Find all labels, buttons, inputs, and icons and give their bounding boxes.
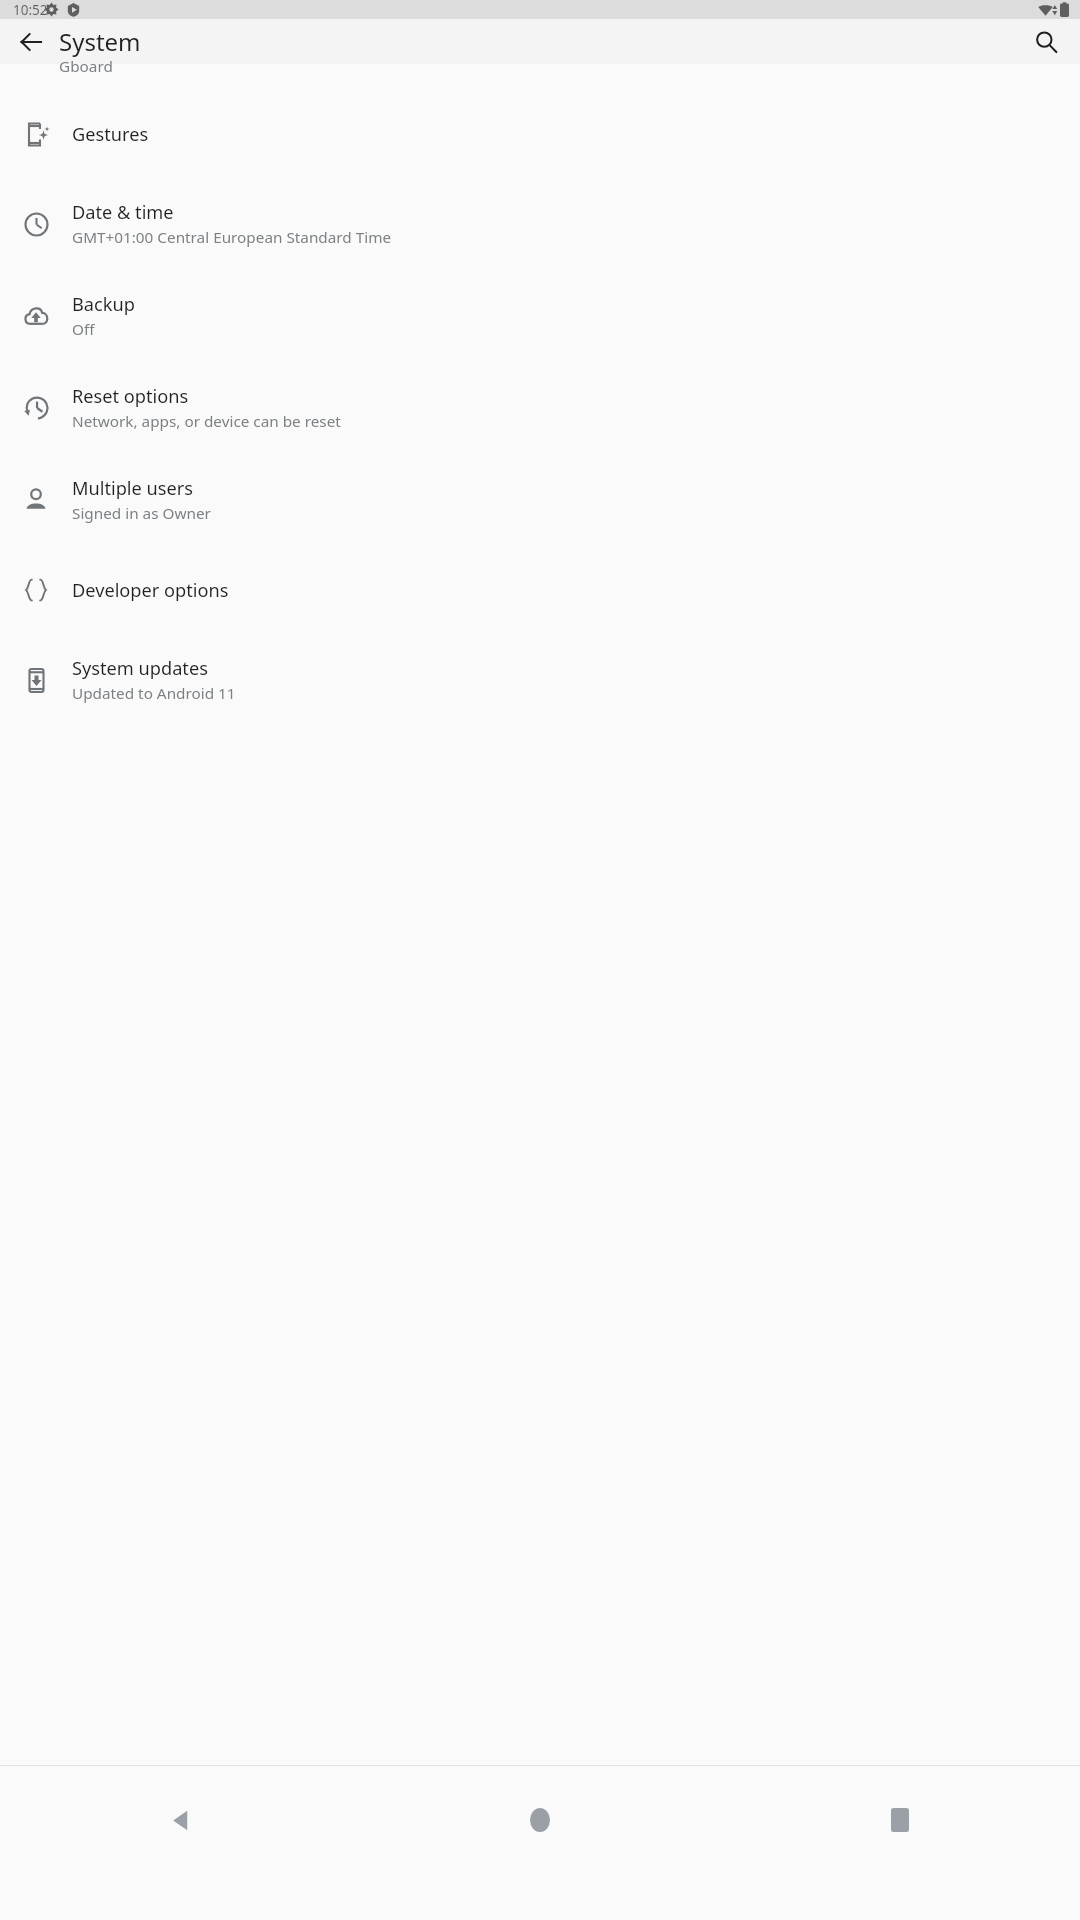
button[interactable]: Recent apps xyxy=(720,1792,1080,1848)
button[interactable]: Home xyxy=(360,1792,720,1848)
button[interactable]: Back xyxy=(7,19,55,64)
staticText: Multiple users xyxy=(72,476,193,501)
button[interactable]: Backup xyxy=(0,270,1080,362)
staticText: Signed in as Owner xyxy=(72,503,211,524)
staticText: Developer options xyxy=(72,578,229,603)
button[interactable]: Developer options xyxy=(0,546,1080,634)
staticText: Gestures xyxy=(72,122,149,147)
button[interactable]: Gestures xyxy=(0,90,1080,178)
staticText: Gboard xyxy=(59,56,113,77)
staticText: Date & time xyxy=(72,200,174,225)
staticText: System updates xyxy=(72,656,208,681)
staticText: Network, apps, or device can be reset xyxy=(72,411,341,432)
staticText: Off xyxy=(72,319,95,340)
button[interactable]: Back xyxy=(0,1792,360,1848)
button[interactable]: Date & time xyxy=(0,178,1080,270)
staticText: GMT+01:00 Central European Standard Time xyxy=(72,227,392,248)
staticText: Backup xyxy=(72,292,135,317)
staticText: Reset options xyxy=(72,384,189,409)
button[interactable]: Reset options xyxy=(0,362,1080,454)
staticText: Updated to Android 11 xyxy=(72,683,236,704)
button[interactable]: Multiple users xyxy=(0,454,1080,546)
staticText: System xyxy=(59,25,141,58)
button[interactable]: System updates xyxy=(0,634,1080,726)
staticText: 10:52 xyxy=(13,1,48,19)
button[interactable]: Search xyxy=(1022,19,1070,64)
